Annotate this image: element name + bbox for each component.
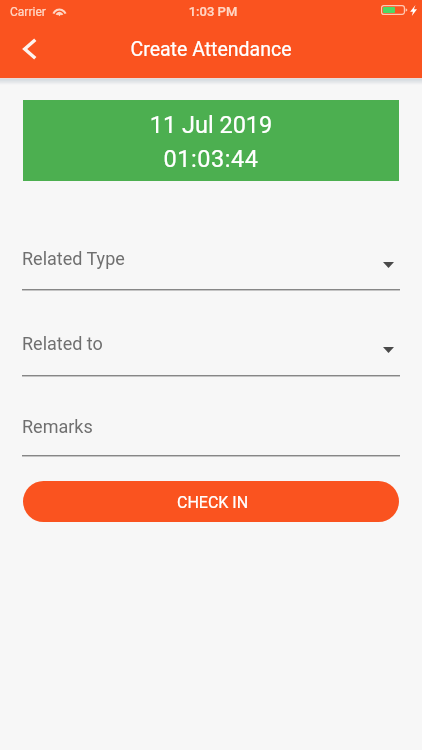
- staticText: 01:03:44: [23, 145, 399, 173]
- staticText: 11 Jul 2019: [23, 111, 399, 139]
- staticText: Remarks: [22, 416, 93, 437]
- staticText: Create Attendance: [0, 38, 422, 61]
- button[interactable]: CHECK IN: [23, 481, 399, 522]
- button[interactable]: Related to: [22, 319, 400, 381]
- staticText: 1:03 PM: [2, 4, 422, 19]
- button[interactable]: Remarks: [22, 402, 400, 461]
- staticText: CHECK IN: [177, 493, 249, 512]
- staticText: Related Type: [22, 248, 125, 269]
- staticText: Carrier: [10, 5, 46, 19]
- button[interactable]: Related Type: [22, 234, 400, 295]
- button[interactable]: Back: [12, 31, 48, 67]
- staticText: Related to: [22, 333, 103, 354]
